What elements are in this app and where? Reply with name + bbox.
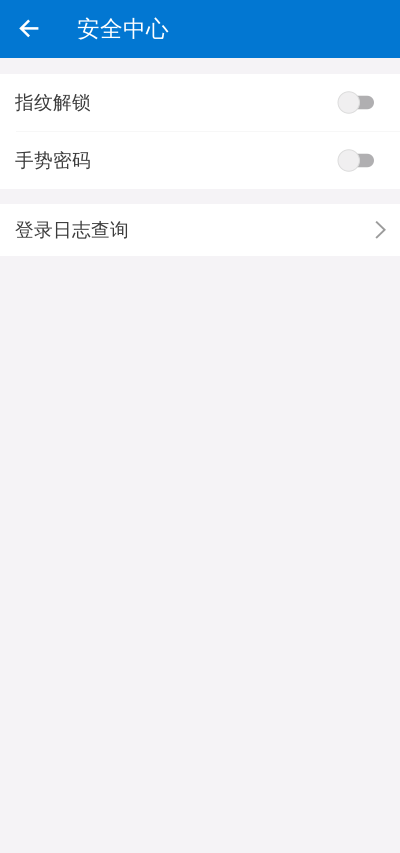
staticText: 手势密码: [15, 149, 91, 172]
button[interactable]: 指纹解锁: [0, 74, 400, 131]
staticText: 指纹解锁: [15, 91, 91, 114]
button[interactable]: 登录日志查询: [0, 204, 400, 256]
button[interactable]: Back: [6, 0, 54, 58]
button[interactable]: 手势密码: [0, 132, 400, 189]
staticText: 登录日志查询: [15, 218, 129, 241]
staticText: 安全中心: [77, 15, 169, 43]
